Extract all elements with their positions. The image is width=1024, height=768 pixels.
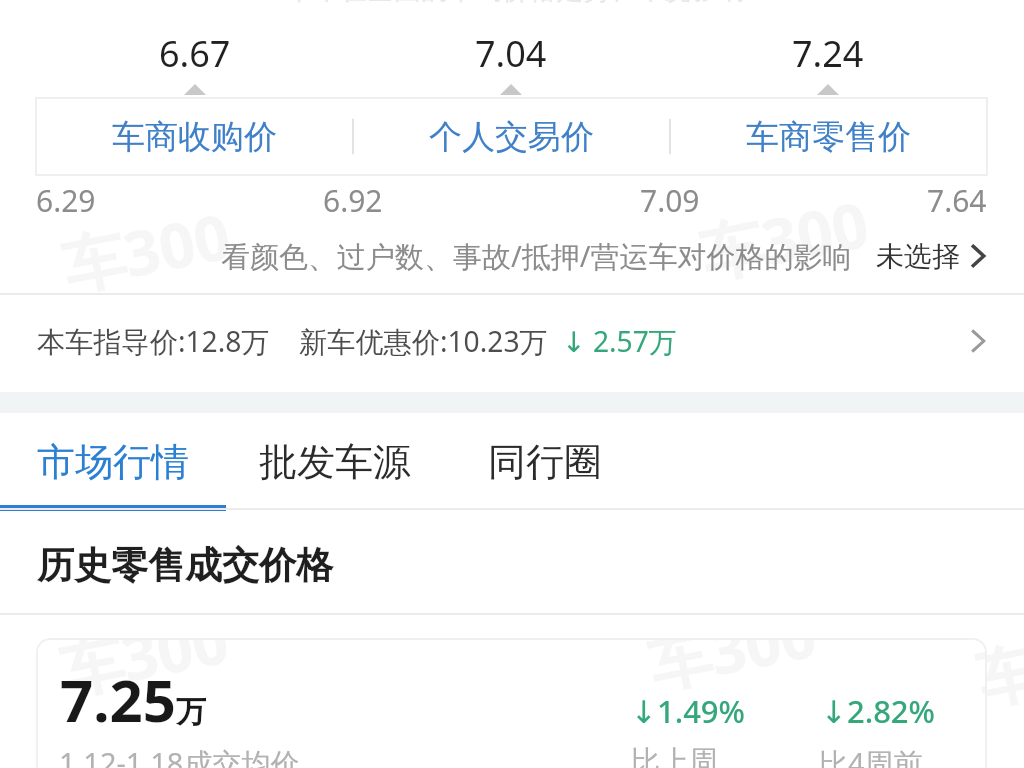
staticText: 车300 bbox=[55, 193, 237, 308]
staticText: 新车优惠价:10.23万 bbox=[299, 322, 548, 361]
button[interactable]: 本车指导价:12.8万 bbox=[0, 303, 1024, 379]
staticText: 比4周前 bbox=[819, 743, 923, 768]
staticText: 7.04 bbox=[475, 29, 547, 78]
staticText: 批发车源 bbox=[259, 438, 411, 486]
staticText: ↓ 2.57万 bbox=[562, 322, 678, 361]
button[interactable]: 车商零售价 bbox=[670, 98, 987, 175]
other: 选择车况条件 bbox=[971, 244, 986, 268]
staticText: 车300 bbox=[693, 181, 875, 296]
staticText: 7.25 bbox=[60, 660, 176, 739]
button[interactable]: 市场行情 bbox=[37, 438, 189, 486]
button[interactable]: 车商收购价 bbox=[36, 98, 353, 175]
staticText: ↓1.49% bbox=[631, 690, 746, 732]
other: 查看新车报价详情 bbox=[971, 329, 986, 353]
staticText: 本车指导价:12.8万 bbox=[37, 322, 270, 361]
staticText: 比上周 bbox=[631, 743, 718, 768]
staticText: 7.09 bbox=[640, 180, 700, 214]
staticText: 车商零售价 bbox=[746, 116, 911, 158]
staticText: 6.67 bbox=[159, 29, 231, 78]
staticText: 车300 bbox=[969, 638, 987, 718]
staticText: 6.92 bbox=[323, 180, 383, 214]
button[interactable]: 看颜色、过户数、事故/抵押/营运车对价格的影响 bbox=[0, 226, 1024, 286]
staticText: 市场行情 bbox=[37, 438, 189, 486]
staticText: 车商收购价 bbox=[112, 116, 277, 158]
staticText: 历史零售成交价格 bbox=[37, 542, 333, 589]
staticText: 1.12-1.18成交均价 bbox=[59, 743, 300, 768]
button[interactable]: 批发车源 bbox=[259, 438, 411, 486]
staticText: 7.24 bbox=[792, 29, 864, 78]
staticText: 万 bbox=[176, 693, 206, 731]
staticText: 个人交易价 bbox=[429, 116, 594, 158]
button[interactable]: 车300 bbox=[36, 638, 987, 768]
button[interactable]: 同行圈 bbox=[488, 438, 602, 486]
staticText: 7.64 bbox=[927, 180, 987, 214]
staticText: 车300 bbox=[53, 638, 235, 712]
button[interactable]: 个人交易价 bbox=[353, 98, 670, 175]
staticText: 同行圈 bbox=[488, 438, 602, 486]
staticText: 车300 bbox=[641, 638, 823, 706]
staticText: 车300 bbox=[968, 607, 1024, 722]
staticText: 本车在全国的平均价格走势、车况影响 bbox=[286, 0, 745, 7]
staticText: 未选择 bbox=[876, 239, 960, 274]
staticText: 6.29 bbox=[36, 180, 96, 214]
staticText: ↓2.82% bbox=[821, 690, 936, 732]
staticText: 看颜色、过户数、事故/抵押/营运车对价格的影响 bbox=[221, 236, 852, 276]
